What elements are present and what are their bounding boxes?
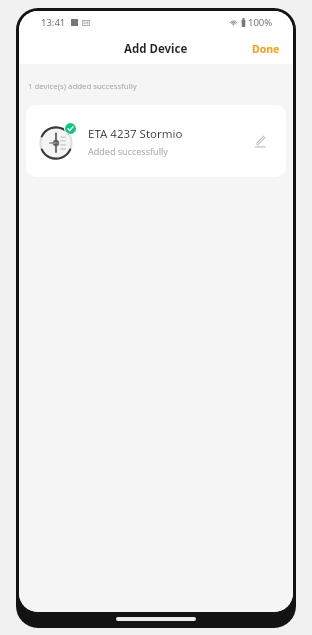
staticText: Done [252, 42, 280, 56]
button[interactable]: ETA 4237 Stormio [26, 105, 286, 177]
button[interactable]: Edit device name [247, 128, 273, 154]
button[interactable]: Done [242, 36, 293, 62]
staticText: Added successfully [88, 145, 168, 157]
staticText: 1 device(s) added successfully [28, 81, 137, 92]
button[interactable]: Add Device [120, 39, 192, 59]
staticText: Add Device [124, 41, 188, 57]
staticText: 100% [248, 16, 273, 29]
staticText: ETA 4237 Stormio [88, 126, 183, 142]
staticText: 13:41 [41, 16, 66, 29]
